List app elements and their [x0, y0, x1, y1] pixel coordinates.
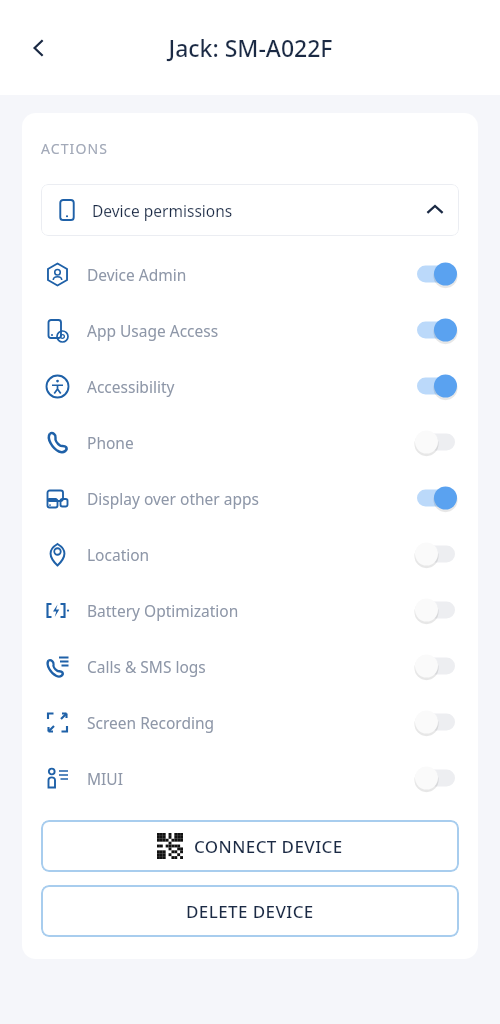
- button[interactable]: Battery Optimization: [41, 582, 459, 638]
- button[interactable]: On: [407, 482, 459, 514]
- button[interactable]: Off: [407, 426, 459, 458]
- button[interactable]: Off: [407, 650, 459, 682]
- button[interactable]: Device permissions: [41, 184, 459, 236]
- staticText: Phone: [87, 432, 134, 453]
- staticText: Battery Optimization: [87, 600, 239, 621]
- staticText: Calls & SMS logs: [87, 656, 206, 677]
- staticText: Device Admin: [87, 264, 187, 285]
- staticText: Jack: SM-A022F: [168, 32, 333, 63]
- staticText: Display over other apps: [87, 488, 259, 509]
- staticText: MIUI: [87, 768, 123, 789]
- staticText: Screen Recording: [87, 712, 215, 733]
- staticText: App Usage Access: [87, 320, 219, 341]
- button[interactable]: Off: [407, 762, 459, 794]
- staticText: DELETE DEVICE: [186, 900, 314, 923]
- button[interactable]: Off: [407, 594, 459, 626]
- button[interactable]: Calls & SMS logs: [41, 638, 459, 694]
- button[interactable]: Back: [18, 27, 60, 69]
- button[interactable]: On: [407, 258, 459, 290]
- staticText: CONNECT DEVICE: [194, 835, 343, 858]
- button[interactable]: Off: [407, 538, 459, 570]
- button[interactable]: Display over other apps: [41, 470, 459, 526]
- button[interactable]: On: [407, 370, 459, 402]
- button[interactable]: Location: [41, 526, 459, 582]
- button[interactable]: CONNECT DEVICE: [41, 820, 459, 872]
- button[interactable]: App Usage Access: [41, 302, 459, 358]
- staticText: Accessibility: [87, 376, 175, 397]
- button[interactable]: MIUI: [41, 750, 459, 806]
- button[interactable]: Phone: [41, 414, 459, 470]
- button[interactable]: Off: [407, 706, 459, 738]
- button[interactable]: Accessibility: [41, 358, 459, 414]
- staticText: ACTIONS: [41, 139, 109, 158]
- button[interactable]: Device Admin: [41, 246, 459, 302]
- button[interactable]: Screen Recording: [41, 694, 459, 750]
- button[interactable]: On: [407, 314, 459, 346]
- button[interactable]: DELETE DEVICE: [41, 885, 459, 937]
- staticText: Device permissions: [92, 200, 233, 221]
- staticText: Location: [87, 544, 150, 565]
